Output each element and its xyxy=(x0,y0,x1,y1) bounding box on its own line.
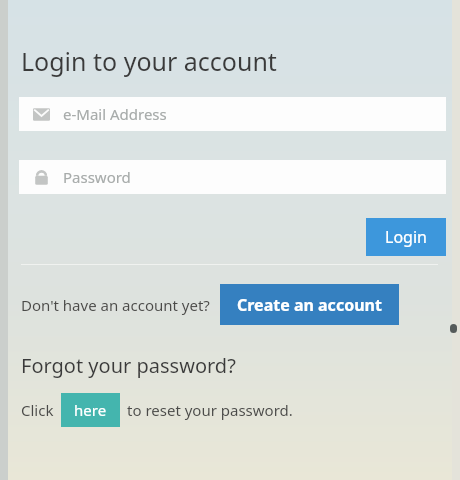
other: Scroll position xyxy=(450,324,457,333)
staticText: e-Mail Address xyxy=(63,104,167,124)
staticText: to reset your password. xyxy=(127,400,293,420)
staticText: Create an account xyxy=(237,294,382,316)
button[interactable]: here xyxy=(61,393,120,427)
button[interactable]: Create an account xyxy=(220,284,399,325)
staticText: Login xyxy=(385,226,427,248)
staticText: here xyxy=(74,400,107,420)
button[interactable]: Password xyxy=(19,160,446,194)
staticText: Don't have an account yet? xyxy=(21,295,210,315)
button[interactable]: e-Mail Address xyxy=(19,97,446,131)
staticText: Forgot your password? xyxy=(21,352,236,379)
staticText: Login to your account xyxy=(21,44,277,78)
staticText: Password xyxy=(63,167,131,187)
staticText: Click xyxy=(21,400,54,420)
button[interactable]: Login xyxy=(366,218,446,256)
